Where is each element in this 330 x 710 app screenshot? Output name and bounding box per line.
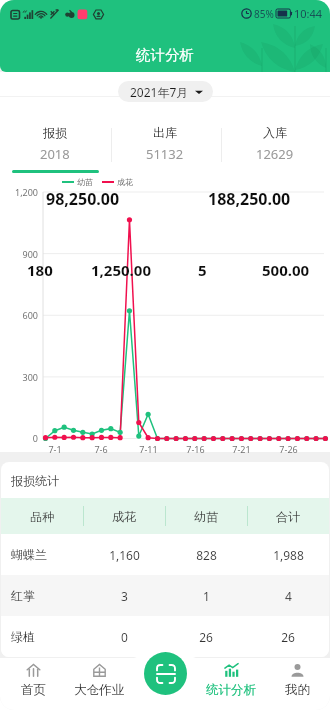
staticText: 828 [196,547,217,563]
staticText: 合计 [276,509,300,524]
staticText: 绿植 [11,629,35,644]
staticText: 幼苗 [194,509,218,524]
button[interactable]: 报损 [0,110,110,175]
staticText: 2021年7月 [130,84,189,100]
staticText: 500.00 [262,260,310,280]
staticText: 85% [254,7,274,21]
staticText: 报损统计 [11,473,59,488]
staticText: 幼苗 [77,177,93,187]
staticText: 12629 [256,145,294,163]
button[interactable]: 首页 [0,658,66,710]
staticText: 1,200 [14,186,38,198]
staticText: 0 [32,432,38,444]
staticText: 188,250.00 [208,188,291,210]
staticText: 98,250.00 [46,188,120,210]
button[interactable]: 入库 [220,110,330,175]
staticText: 4 [285,588,292,604]
staticText: 1 [203,588,210,604]
staticText: 成花 [117,177,133,187]
staticText: 品种 [30,509,54,524]
staticText: 10:44 [294,6,323,21]
staticText: 大仓作业 [74,682,124,698]
staticText: 51132 [146,145,184,163]
staticText: 7-26 [279,443,298,455]
button[interactable]: 我的 [264,658,330,710]
staticText: 7-16 [186,443,205,455]
staticText: 5 [198,260,207,280]
staticText: 26 [199,629,213,645]
staticText: 出库 [153,125,177,140]
button[interactable]: 大仓作业 [66,658,132,710]
staticText: 26 [281,629,295,645]
staticText: 7-1 [48,443,62,455]
staticText: 报损 [43,125,67,140]
staticText: 统计分析 [136,46,194,64]
staticText: 7-11 [139,443,158,455]
button[interactable]: 统计分析 [198,658,264,710]
staticText: 1,160 [109,547,140,563]
staticText: 0 [121,629,128,645]
button[interactable]: 2021年7月 [118,81,213,102]
staticText: 1,988 [273,547,304,563]
button[interactable]: 扫一扫 Scan [144,652,187,695]
staticText: 2018 [40,145,70,163]
staticText: 入库 [263,125,287,140]
staticText: 成花 [112,509,136,524]
staticText: 300 [22,371,38,383]
staticText: 900 [22,248,38,260]
staticText: 1,250.00 [91,260,151,280]
staticText: 首页 [21,682,46,698]
staticText: 统计分析 [206,682,256,698]
staticText: 7-6 [94,443,108,455]
button[interactable]: 出库 [110,110,220,175]
staticText: 我的 [285,682,310,698]
staticText: 红掌 [11,588,35,603]
staticText: 3 [121,588,128,604]
staticText: 600 [22,309,38,321]
staticText: 蝴蝶兰 [11,547,47,562]
staticText: 7-21 [232,443,251,455]
staticText: 180 [27,260,53,280]
